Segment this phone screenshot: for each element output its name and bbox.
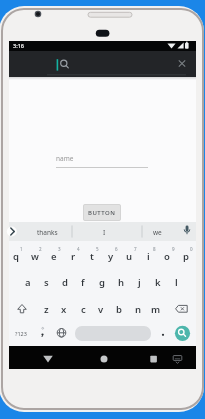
button[interactable]: t (77, 249, 107, 263)
button[interactable]: o (152, 249, 182, 263)
button[interactable] (12, 300, 30, 316)
staticText: 0 (190, 246, 193, 252)
staticText: h (118, 276, 125, 289)
button[interactable] (170, 350, 190, 368)
staticText: 6 (115, 246, 118, 252)
staticText: ?123 (15, 330, 27, 337)
button[interactable]: s (31, 275, 61, 289)
button[interactable] (9, 51, 196, 77)
staticText: 8 (153, 246, 156, 252)
button[interactable]: l (161, 275, 191, 289)
button[interactable]: z (31, 302, 61, 316)
button[interactable] (5, 224, 19, 238)
button[interactable]: k (143, 275, 173, 289)
staticText: 4 (77, 246, 80, 252)
button[interactable] (53, 325, 70, 341)
staticText: c (81, 303, 86, 316)
button[interactable]: c (68, 302, 98, 316)
button[interactable]: b (104, 302, 134, 316)
button[interactable] (175, 56, 189, 70)
staticText: 1 (20, 246, 23, 252)
staticText: 2 (39, 246, 42, 252)
button[interactable]: f (68, 275, 98, 289)
button[interactable] (180, 224, 194, 238)
staticText: y (108, 250, 114, 263)
staticText: I (103, 228, 106, 237)
staticText: a (25, 276, 31, 289)
button[interactable]: r (58, 249, 88, 263)
staticText: u (126, 250, 133, 263)
staticText: b (116, 303, 122, 316)
staticText: d (62, 276, 68, 289)
button[interactable]: d (50, 275, 80, 289)
button[interactable]: j (124, 275, 154, 289)
button[interactable]: a (13, 275, 43, 289)
button[interactable]: ?123 (6, 326, 36, 340)
staticText: name (56, 154, 74, 163)
staticText: v (98, 303, 104, 316)
staticText: g (99, 276, 105, 289)
staticText: k (155, 276, 161, 289)
staticText: t (90, 250, 94, 263)
staticText: z (44, 303, 49, 316)
staticText: x (61, 303, 67, 316)
staticText: n (135, 303, 142, 316)
button[interactable]: p (171, 249, 201, 263)
button[interactable]: q (1, 249, 31, 263)
button[interactable]: we (142, 225, 172, 239)
button[interactable]: w (20, 249, 50, 263)
staticText: we (153, 228, 162, 237)
staticText: 9 (172, 246, 175, 252)
button[interactable] (94, 350, 114, 368)
staticText: q (13, 250, 19, 263)
staticText: w (31, 250, 39, 263)
staticText: 7 (134, 246, 137, 252)
button[interactable] (144, 350, 164, 368)
staticText: BUTTON (88, 209, 116, 217)
button[interactable]: y (96, 249, 126, 263)
button[interactable] (173, 300, 191, 316)
button[interactable]: e (39, 249, 69, 263)
button[interactable] (38, 350, 58, 368)
button[interactable] (50, 150, 154, 172)
staticText: thanks (37, 228, 58, 237)
button[interactable] (174, 325, 191, 342)
button[interactable]: u (114, 249, 144, 263)
staticText: j (138, 276, 141, 289)
button[interactable]: g (87, 275, 117, 289)
button[interactable]: h (106, 275, 136, 289)
button[interactable]: n (123, 302, 153, 316)
button[interactable]: BUTTON (83, 204, 121, 221)
button[interactable]: v (86, 302, 116, 316)
button[interactable]: I (89, 225, 119, 239)
staticText: i (147, 250, 150, 263)
button[interactable]: x (49, 302, 79, 316)
staticText: o (164, 250, 170, 263)
staticText: m (151, 303, 161, 316)
button[interactable]: m (141, 302, 171, 316)
button[interactable]: thanks (32, 225, 62, 239)
staticText: p (183, 250, 189, 263)
button[interactable]: i (133, 249, 163, 263)
staticText: e (51, 250, 57, 263)
staticText: 5 (96, 246, 99, 252)
staticText: r (71, 250, 76, 263)
staticText: 3 (58, 246, 61, 252)
button[interactable] (75, 326, 151, 341)
staticText: s (44, 276, 49, 289)
staticText: f (81, 276, 85, 289)
staticText: l (175, 276, 178, 289)
staticText: 3:16 (13, 42, 24, 49)
